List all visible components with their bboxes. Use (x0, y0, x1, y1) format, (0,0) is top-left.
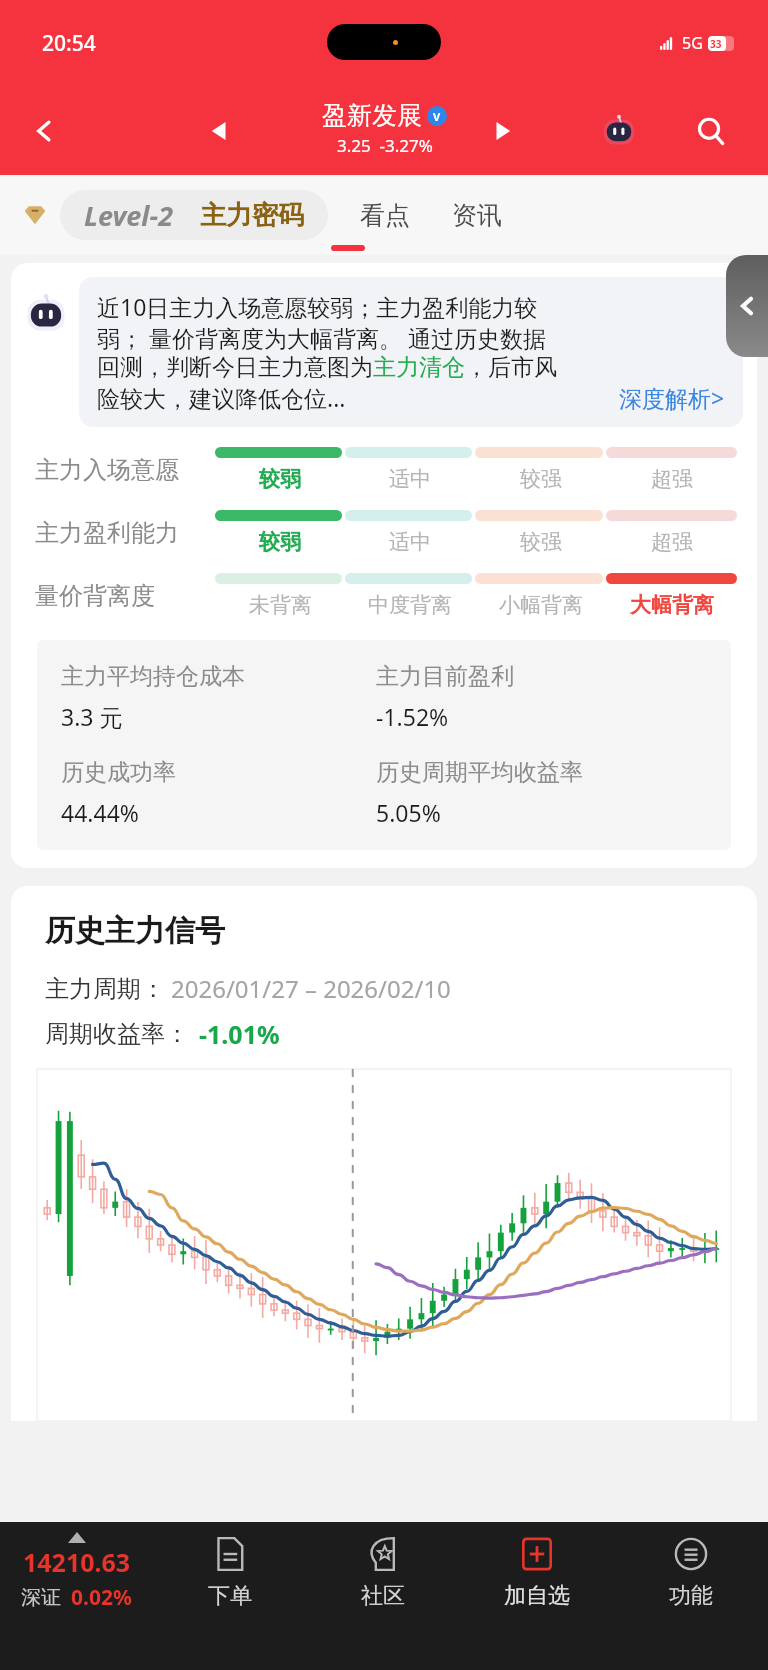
staticText: 弱； 量价背离度为大幅背离。 通过历史数据 (97, 322, 546, 353)
button[interactable]: AI assistant (596, 108, 642, 154)
button[interactable]: Back (22, 109, 66, 153)
staticText: 14210.63 (23, 1545, 131, 1579)
staticText: 深证 (21, 1585, 61, 1610)
staticText: 主力清仓 (373, 353, 465, 382)
button[interactable]: 资讯 (446, 200, 508, 231)
staticText: 历史成功率 (61, 758, 176, 787)
staticText: 主力平均持仓成本 (61, 662, 245, 691)
staticText: 未背离 (249, 592, 312, 618)
button[interactable]: 社区 (306, 1522, 460, 1670)
staticText: 较弱 (259, 466, 301, 492)
staticText: 适中 (389, 466, 431, 492)
staticText: 历史周期平均收益率 (376, 758, 583, 787)
button[interactable]: 近10日主力入场意愿较弱；主力盈利能力较 (79, 277, 743, 427)
staticText: 0.02% (71, 1583, 132, 1612)
staticText: 3.25 -3.27% (337, 134, 433, 157)
staticText: 近10日主力入场意愿较弱；主力盈利能力较 (97, 291, 538, 322)
button[interactable]: 深度解析> (619, 382, 725, 413)
staticText: 功能 (669, 1582, 713, 1610)
staticText: -1.52% (376, 701, 449, 732)
button[interactable]: Level-2 (84, 197, 174, 234)
button[interactable]: Expand panel (726, 255, 768, 357)
staticText: 社区 (361, 1582, 405, 1610)
button[interactable]: Next stock (480, 108, 526, 154)
staticText: 周期收益率： (45, 1019, 189, 1049)
staticText: 大幅背离 (630, 592, 714, 618)
staticText: 看点 (360, 200, 410, 231)
staticText: 44.44% (61, 797, 139, 828)
staticText: 主力目前盈利 (376, 662, 514, 691)
staticText: V (433, 109, 441, 124)
button[interactable]: Previous stock (196, 108, 242, 154)
staticText: 加自选 (504, 1582, 570, 1610)
staticText: 资讯 (452, 200, 502, 231)
staticText: 主力入场意愿 (35, 455, 179, 485)
button[interactable]: 下单 (153, 1522, 306, 1670)
staticText: 33 (710, 37, 722, 51)
staticText: 2026/01/27 – 2026/02/10 (171, 972, 451, 1005)
button[interactable]: 14210.63 (0, 1532, 153, 1612)
staticText: 小幅背离 (499, 592, 583, 618)
staticText: 下单 (208, 1582, 252, 1610)
button[interactable]: 加自选 (460, 1522, 614, 1670)
button[interactable]: 功能 (614, 1522, 768, 1670)
staticText: Level-2 (84, 197, 174, 234)
staticText: 适中 (389, 529, 431, 555)
staticText: 盈新发展 (322, 100, 422, 131)
button[interactable]: 主力密码 (200, 199, 304, 232)
staticText: 主力盈利能力 (35, 518, 179, 548)
staticText: ，后市风 (465, 353, 557, 382)
staticText: 险较大，建议降低仓位... (97, 382, 346, 413)
staticText: -1.01% (199, 1017, 280, 1051)
staticText: 20:54 (42, 29, 96, 58)
staticText: 较弱 (259, 529, 301, 555)
staticText: 历史主力信号 (45, 912, 225, 950)
staticText: 回测，判断今日主力意图为 (97, 353, 373, 382)
button[interactable]: 看点 (354, 200, 416, 231)
staticText: 主力密码 (200, 199, 304, 232)
staticText: 较强 (520, 529, 562, 555)
staticText: 量价背离度 (35, 581, 155, 611)
staticText: 超强 (651, 529, 693, 555)
staticText: 超强 (651, 466, 693, 492)
staticText: 5G (682, 32, 703, 54)
staticText: 中度背离 (368, 592, 452, 618)
staticText: 3.3 元 (61, 701, 123, 732)
button[interactable]: Search (688, 108, 734, 154)
staticText: 较强 (520, 466, 562, 492)
staticText: 5.05% (376, 797, 441, 828)
staticText: 主力周期： (45, 974, 165, 1004)
